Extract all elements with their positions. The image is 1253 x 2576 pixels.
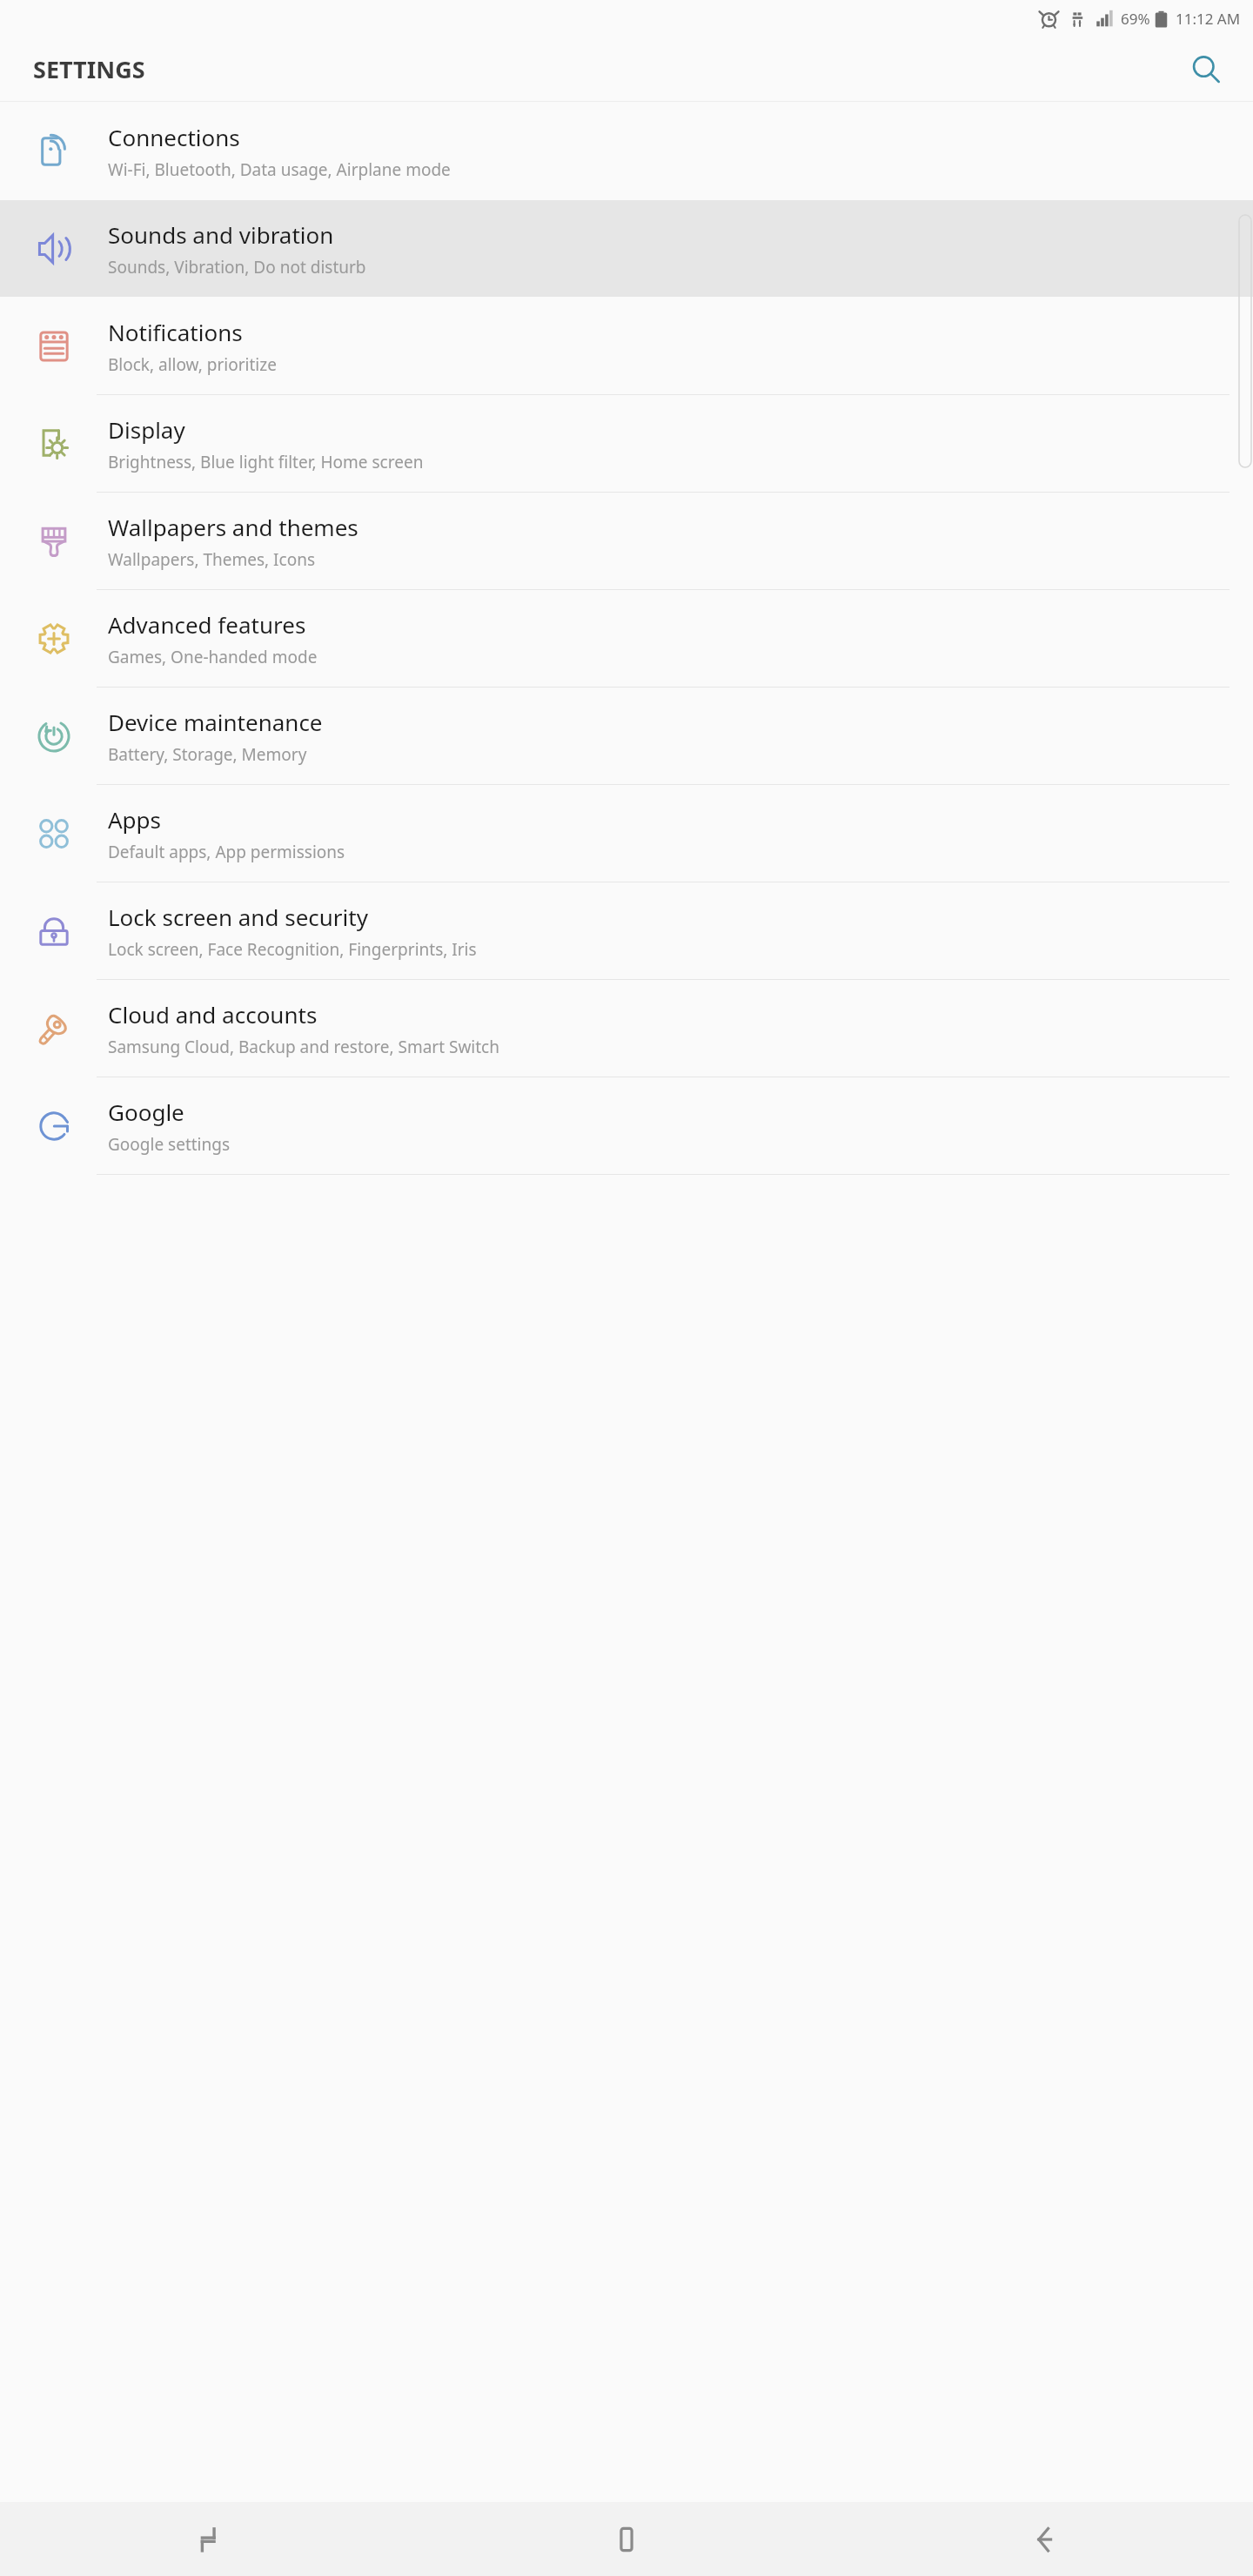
- staticText: Apps: [108, 804, 162, 835]
- staticText: Sounds and vibration: [108, 219, 334, 250]
- staticText: Default apps, App permissions: [108, 841, 345, 863]
- button[interactable]: Notifications: [0, 298, 1253, 394]
- button[interactable]: Display: [0, 395, 1253, 492]
- staticText: Battery, Storage, Memory: [108, 743, 307, 766]
- staticText: Sounds, Vibration, Do not disturb: [108, 256, 366, 278]
- button[interactable]: Wallpapers and themes: [0, 493, 1253, 589]
- staticText: Samsung Cloud, Backup and restore, Smart…: [108, 1036, 499, 1058]
- staticText: Google settings: [108, 1133, 231, 1156]
- staticText: Wi-Fi, Bluetooth, Data usage, Airplane m…: [108, 158, 451, 181]
- button[interactable]: Connections: [0, 103, 1253, 199]
- staticText: 11:12 AM: [1176, 9, 1241, 29]
- staticText: Cloud and accounts: [108, 999, 318, 1030]
- button[interactable]: Google: [0, 1077, 1253, 1174]
- staticText: Device maintenance: [108, 707, 323, 737]
- button[interactable]: Sounds and vibration: [0, 200, 1253, 297]
- staticText: Display: [108, 414, 185, 445]
- staticText: 69%: [1121, 9, 1150, 29]
- staticText: SETTINGS: [33, 53, 145, 85]
- button[interactable]: Apps: [0, 785, 1253, 882]
- staticText: Block, allow, prioritize: [108, 353, 277, 376]
- staticText: Lock screen, Face Recognition, Fingerpri…: [108, 938, 477, 961]
- staticText: Brightness, Blue light filter, Home scre…: [108, 451, 424, 473]
- button[interactable]: Device maintenance: [0, 688, 1253, 784]
- staticText: Notifications: [108, 317, 243, 347]
- staticText: Connections: [108, 122, 240, 152]
- staticText: Wallpapers, Themes, Icons: [108, 548, 316, 571]
- button[interactable]: Cloud and accounts: [0, 980, 1253, 1077]
- staticText: Wallpapers and themes: [108, 512, 358, 542]
- button[interactable]: Advanced features: [0, 590, 1253, 687]
- button[interactable]: Back: [835, 2502, 1253, 2576]
- button[interactable]: Lock screen and security: [0, 882, 1253, 979]
- staticText: Advanced features: [108, 609, 306, 640]
- staticText: Google: [108, 1097, 184, 1127]
- staticText: Lock screen and security: [108, 902, 368, 932]
- button[interactable]: Home: [418, 2502, 835, 2576]
- staticText: Games, One-handed mode: [108, 646, 318, 668]
- button[interactable]: Recents: [0, 2502, 418, 2576]
- button[interactable]: Search: [1182, 45, 1230, 94]
